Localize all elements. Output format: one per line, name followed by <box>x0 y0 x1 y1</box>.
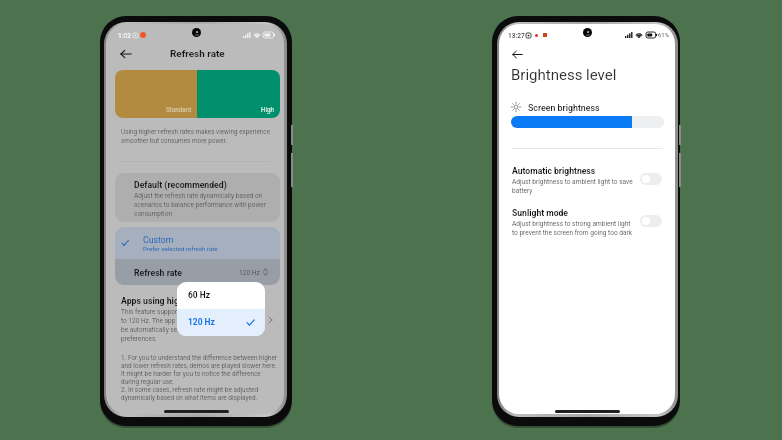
button[interactable]: 120 Hz <box>177 309 265 336</box>
button[interactable]: Sunlight mode <box>512 207 640 237</box>
staticText: 120 Hz <box>188 317 215 328</box>
button[interactable]: Refresh rate <box>115 259 280 285</box>
staticText: Sunlight mode <box>512 207 569 218</box>
staticText: Custom <box>143 234 174 245</box>
staticText: This feature supports adjusting the refr… <box>121 307 257 343</box>
staticText: High <box>261 106 275 114</box>
button[interactable]: Automatic brightness <box>640 173 662 185</box>
staticText: Adjust the refresh rate dynamically base… <box>134 191 266 218</box>
staticText: Brightness level <box>511 65 617 84</box>
button[interactable]: 60 Hz <box>177 282 265 309</box>
staticText: Prefer selected refresh rate <box>143 245 218 253</box>
staticText: Default (recommended) <box>134 179 227 190</box>
staticText: 60 Hz <box>188 290 210 301</box>
staticText: 13:27 <box>508 31 525 39</box>
button[interactable]: Default (recommended) <box>115 173 280 222</box>
staticText: 120 Hz <box>239 268 260 276</box>
button[interactable]: Back <box>506 46 528 62</box>
staticText: Apps using high refresh rate <box>121 295 232 306</box>
button[interactable]: Sunlight mode <box>640 215 662 227</box>
button[interactable]: High <box>197 70 280 118</box>
staticText: Refresh rate <box>134 267 182 278</box>
staticText: 1. For you to understand the difference … <box>121 354 277 402</box>
button[interactable]: Back <box>115 46 137 62</box>
staticText: Refresh rate <box>170 47 225 59</box>
button[interactable]: Automatic brightness <box>512 165 640 195</box>
staticText: 61% <box>658 31 670 39</box>
button[interactable]: Screen brightness slider <box>511 116 664 128</box>
staticText: Screen brightness <box>528 102 600 113</box>
staticText: Adjust brightness to ambient light to sa… <box>512 177 633 195</box>
button[interactable]: Custom <box>115 227 280 259</box>
button[interactable]: Apps using high refresh rate <box>121 295 261 343</box>
button[interactable]: Standard <box>115 70 197 118</box>
staticText: 1:02 <box>118 31 131 39</box>
staticText: Using higher refresh rates makes viewing… <box>121 127 271 145</box>
staticText: Standard <box>166 106 192 114</box>
staticText: Adjust brightness to strong ambient ligh… <box>512 219 633 237</box>
staticText: Automatic brightness <box>512 165 596 176</box>
